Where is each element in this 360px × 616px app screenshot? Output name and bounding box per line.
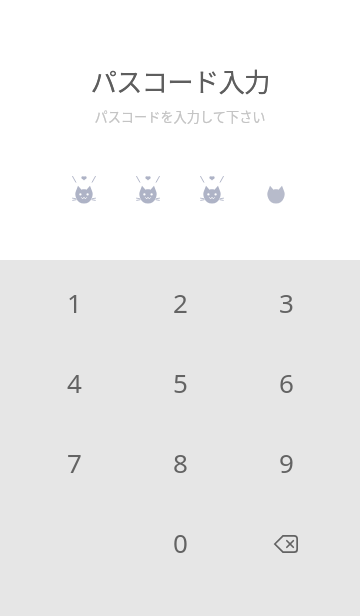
staticText: 8 (173, 445, 188, 480)
staticText: 9 (279, 445, 294, 480)
button[interactable]: 7 (21, 422, 127, 502)
button[interactable]: 3 (233, 262, 339, 342)
staticText: 0 (173, 525, 188, 560)
button[interactable]: 1 (21, 262, 127, 342)
button[interactable]: 6 (233, 342, 339, 422)
staticText: 1 (67, 285, 82, 320)
staticText: 3 (279, 285, 294, 320)
staticText: パスコード入力 (90, 61, 270, 99)
staticText: 5 (173, 365, 188, 400)
staticText: パスコードを入力して下さい (94, 107, 266, 126)
button[interactable]: 8 (127, 422, 233, 502)
staticText: 4 (67, 365, 82, 400)
staticText: パスコード入力 (90, 61, 270, 99)
staticText: 2 (173, 285, 188, 320)
staticText: 7 (67, 445, 82, 480)
button[interactable]: 2 (127, 262, 233, 342)
other: Backspace (274, 535, 298, 553)
staticText: 6 (279, 365, 294, 400)
button[interactable]: Backspace (233, 502, 339, 582)
button[interactable]: 9 (233, 422, 339, 502)
button[interactable]: 0 (127, 502, 233, 582)
button[interactable]: 5 (127, 342, 233, 422)
button[interactable]: 4 (21, 342, 127, 422)
